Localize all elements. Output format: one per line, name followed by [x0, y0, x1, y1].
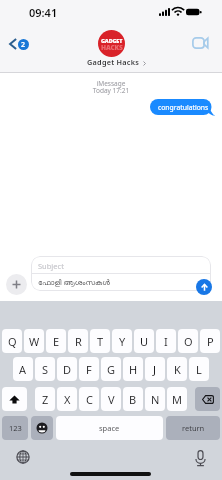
- staticText: congratulations: [158, 103, 209, 112]
- button[interactable]: Backspace: [195, 387, 220, 411]
- staticText: return: [182, 423, 205, 433]
- button[interactable]: U: [134, 329, 154, 353]
- staticText: G: [107, 362, 116, 377]
- staticText: 2: [21, 40, 26, 50]
- staticText: Today 17:21: [0, 86, 222, 95]
- staticText: U: [140, 334, 149, 349]
- button[interactable]: Emoji keyboard: [31, 416, 53, 440]
- staticText: B: [129, 392, 137, 407]
- button[interactable]: S: [35, 357, 55, 381]
- button[interactable]: D: [57, 357, 77, 381]
- staticText: O: [184, 334, 193, 349]
- staticText: C: [86, 392, 93, 407]
- button[interactable]: congratulations: [150, 99, 215, 115]
- button[interactable]: Y: [112, 329, 132, 353]
- button[interactable]: Subject: [31, 256, 211, 291]
- button[interactable]: J: [145, 357, 165, 381]
- button[interactable]: return: [166, 416, 220, 440]
- staticText: M: [172, 392, 182, 407]
- staticText: space: [99, 423, 120, 433]
- button[interactable]: K: [167, 357, 187, 381]
- staticText: A: [19, 362, 27, 377]
- staticText: S: [42, 362, 49, 377]
- button[interactable]: N: [145, 387, 165, 411]
- button[interactable]: M: [167, 387, 187, 411]
- button[interactable]: Q: [2, 329, 22, 353]
- staticText: R: [75, 334, 82, 349]
- staticText: HACKS: [101, 43, 123, 52]
- button[interactable]: 123: [2, 416, 28, 440]
- staticText: ഫോളി ആശംസകൾ: [38, 277, 110, 287]
- button[interactable]: I: [156, 329, 176, 353]
- button[interactable]: T: [90, 329, 110, 353]
- button[interactable]: Shift: [2, 387, 27, 411]
- staticText: E: [53, 334, 60, 349]
- button[interactable]: W: [24, 329, 44, 353]
- button[interactable]: X: [57, 387, 77, 411]
- button[interactable]: space: [56, 416, 163, 440]
- button[interactable]: E: [46, 329, 66, 353]
- staticText: 09:41: [29, 5, 58, 20]
- staticText: iMessage: [0, 79, 222, 88]
- staticText: X: [64, 392, 71, 407]
- staticText: I: [164, 334, 168, 349]
- staticText: Z: [42, 392, 49, 407]
- staticText: L: [196, 362, 202, 377]
- button[interactable]: L: [189, 357, 209, 381]
- staticText: Subject: [38, 261, 64, 271]
- staticText: D: [63, 362, 72, 377]
- button[interactable]: Add attachment: [6, 274, 27, 295]
- button[interactable]: F: [79, 357, 99, 381]
- button[interactable]: FaceTime video call: [190, 35, 211, 51]
- button[interactable]: Z: [35, 387, 55, 411]
- staticText: 123: [9, 423, 22, 433]
- button[interactable]: H: [123, 357, 143, 381]
- button[interactable]: O: [178, 329, 198, 353]
- staticText: H: [129, 362, 138, 377]
- staticText: N: [151, 392, 160, 407]
- staticText: GADGET: [101, 37, 123, 44]
- staticText: J: [153, 362, 157, 377]
- button[interactable]: G: [101, 357, 121, 381]
- button[interactable]: B: [123, 387, 143, 411]
- button[interactable]: P: [200, 329, 220, 353]
- staticText: Gadget Hacks: [87, 57, 140, 67]
- button[interactable]: A: [13, 357, 33, 381]
- staticText: F: [86, 362, 92, 377]
- button[interactable]: Send message: [196, 279, 212, 295]
- button[interactable]: Back, 2 unread messages: [6, 36, 32, 52]
- staticText: W: [29, 334, 40, 349]
- button[interactable]: R: [68, 329, 88, 353]
- button[interactable]: Change keyboard language: [16, 450, 30, 464]
- button[interactable]: C: [79, 387, 99, 411]
- staticText: P: [207, 334, 214, 349]
- button[interactable]: Dictate: [194, 450, 207, 467]
- staticText: T: [97, 334, 104, 349]
- staticText: V: [108, 392, 115, 407]
- staticText: K: [174, 362, 181, 377]
- staticText: Y: [119, 334, 126, 349]
- staticText: Q: [8, 334, 17, 349]
- button[interactable]: GADGET: [0, 30, 222, 68]
- button[interactable]: V: [101, 387, 121, 411]
